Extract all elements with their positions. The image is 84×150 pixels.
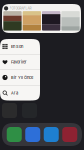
staticText: FOTOĞRAFLAR	[10, 6, 32, 10]
button[interactable]: Favoriler	[0, 54, 40, 69]
staticText: En Son	[11, 44, 23, 49]
button[interactable]: Messages	[23, 127, 42, 142]
staticText: Bir Yıl Önce	[11, 75, 33, 80]
button[interactable]: Phone	[5, 127, 23, 142]
button[interactable]: Bir Yıl Önce	[0, 70, 40, 85]
button[interactable]: Safari	[42, 127, 60, 142]
button[interactable]: Ara	[0, 85, 40, 100]
staticText: Favoriler	[11, 60, 27, 64]
button[interactable]: En Son	[0, 39, 40, 54]
button[interactable]: Music	[60, 127, 79, 142]
staticText: Ara	[11, 91, 18, 95]
